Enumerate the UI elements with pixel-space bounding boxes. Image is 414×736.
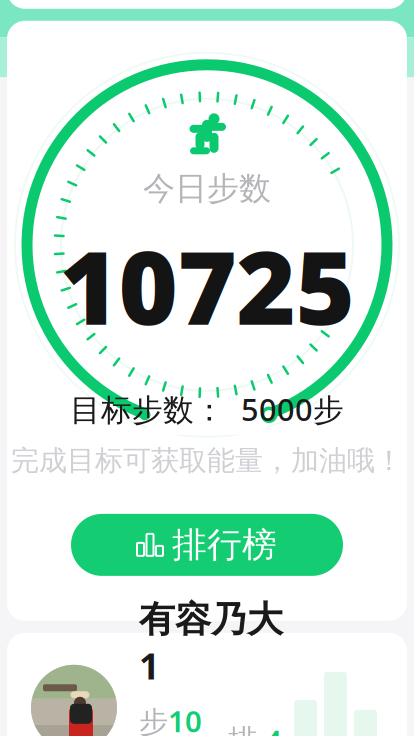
staticText: 10725 — [59, 218, 354, 353]
staticText: 排名: — [228, 722, 265, 736]
staticText: 44 — [265, 721, 282, 736]
staticText: 目标步数： 5000步 — [70, 389, 344, 429]
button[interactable]: 排行榜 — [71, 514, 343, 576]
staticText: 步数: — [139, 704, 168, 736]
staticText: 完成目标可获取能量，加油哦！ — [11, 443, 403, 478]
staticText: 有容乃大1 — [139, 597, 283, 689]
staticText: 10725 — [168, 701, 202, 736]
button[interactable]: 有容乃大1 — [7, 633, 407, 736]
staticText: 排行榜 — [172, 524, 277, 566]
staticText: 今日步数 — [143, 169, 271, 208]
